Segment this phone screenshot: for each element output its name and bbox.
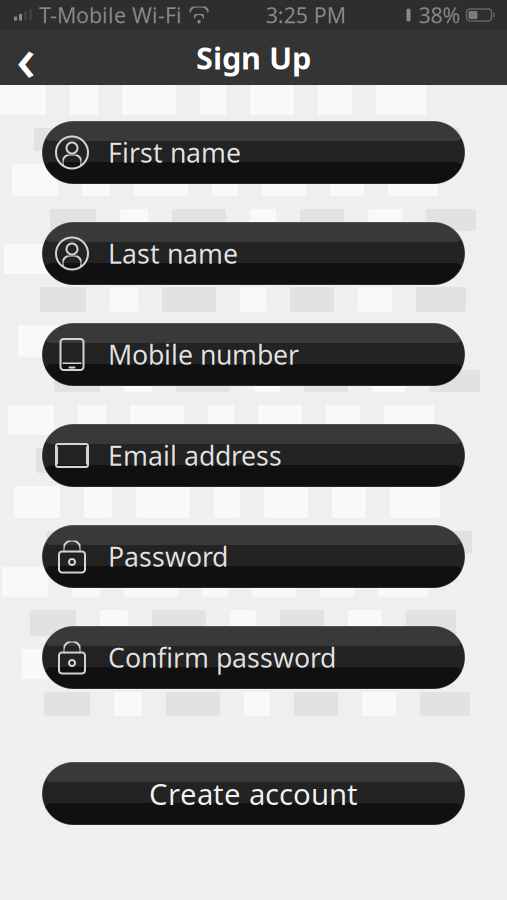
button[interactable]: Back [0, 30, 52, 85]
button[interactable]: Last name [42, 222, 465, 285]
button[interactable]: Confirm password [42, 626, 465, 689]
staticText: T-Mobile Wi-Fi [39, 1, 182, 29]
staticText: ‹ [16, 17, 36, 98]
staticText: 38% [418, 1, 460, 29]
button[interactable]: Password [42, 525, 465, 588]
button[interactable]: First name [42, 121, 465, 184]
staticText: Create account [149, 774, 358, 813]
staticText: Mobile number [108, 337, 299, 372]
button[interactable]: Mobile number [42, 323, 465, 386]
staticText: 3:25 PM [266, 1, 346, 29]
staticText: Sign Up [196, 37, 311, 78]
staticText: Password [108, 539, 228, 574]
button[interactable]: Create account [42, 762, 465, 825]
button[interactable]: Email address [42, 424, 465, 487]
staticText: Email address [108, 438, 282, 473]
staticText: Last name [108, 236, 238, 271]
staticText: Confirm password [108, 640, 336, 675]
staticText: First name [108, 135, 241, 170]
